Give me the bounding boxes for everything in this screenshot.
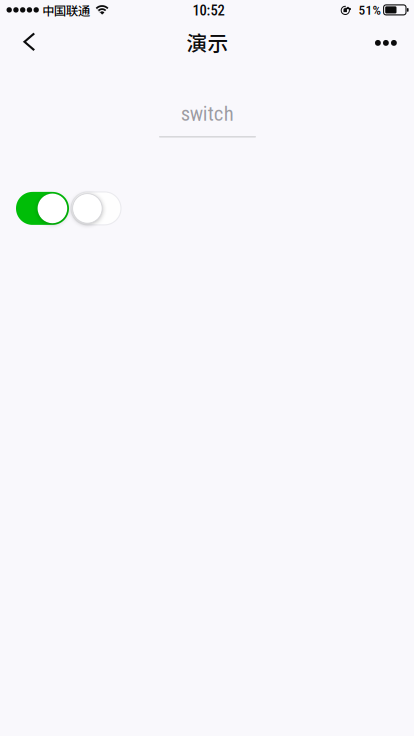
staticText: switch — [181, 101, 234, 126]
staticText: 10:52 — [193, 2, 225, 19]
staticText: 演示 — [186, 27, 228, 57]
button[interactable]: More options — [362, 21, 410, 65]
staticText: 51% — [358, 2, 380, 18]
staticText: 中国联通 — [42, 1, 90, 19]
button[interactable]: Switch, on — [16, 192, 69, 225]
button[interactable]: Back — [5, 20, 53, 64]
button[interactable]: Switch, off — [71, 192, 121, 225]
